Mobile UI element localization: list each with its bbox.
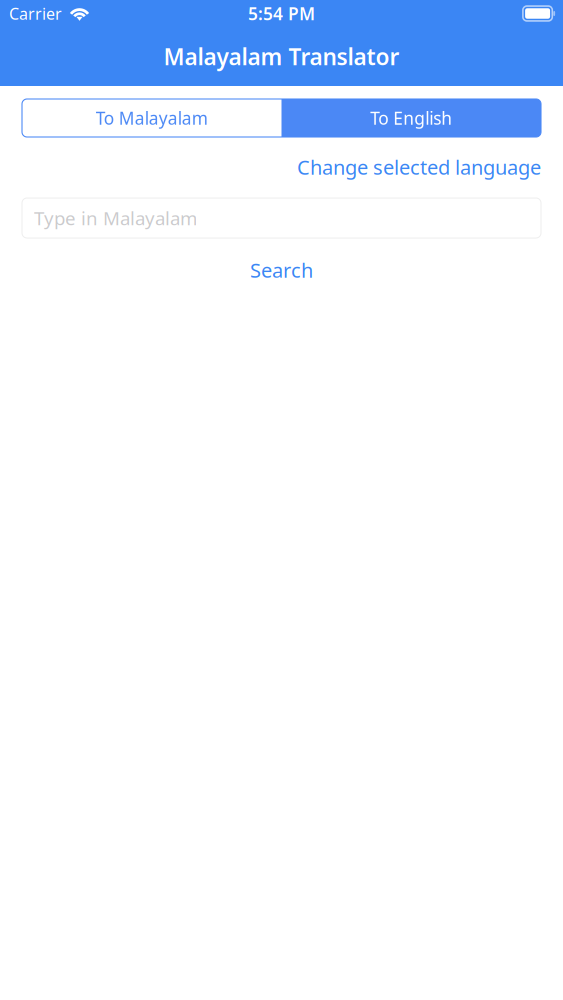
- staticText: 5:54 PM: [248, 2, 315, 25]
- button[interactable]: Change selected language: [22, 137, 541, 179]
- staticText: Malayalam Translator: [163, 41, 399, 71]
- staticText: Type in Malayalam: [34, 206, 197, 230]
- staticText: Change selected language: [297, 154, 541, 180]
- button[interactable]: To English: [281, 99, 541, 137]
- button[interactable]: To Malayalam: [22, 99, 281, 137]
- button[interactable]: Type in Malayalam: [22, 179, 541, 238]
- staticText: To English: [370, 106, 452, 129]
- staticText: Search: [250, 257, 313, 283]
- staticText: Carrier: [9, 3, 62, 24]
- button[interactable]: Search: [22, 238, 541, 282]
- staticText: To Malayalam: [96, 106, 208, 129]
